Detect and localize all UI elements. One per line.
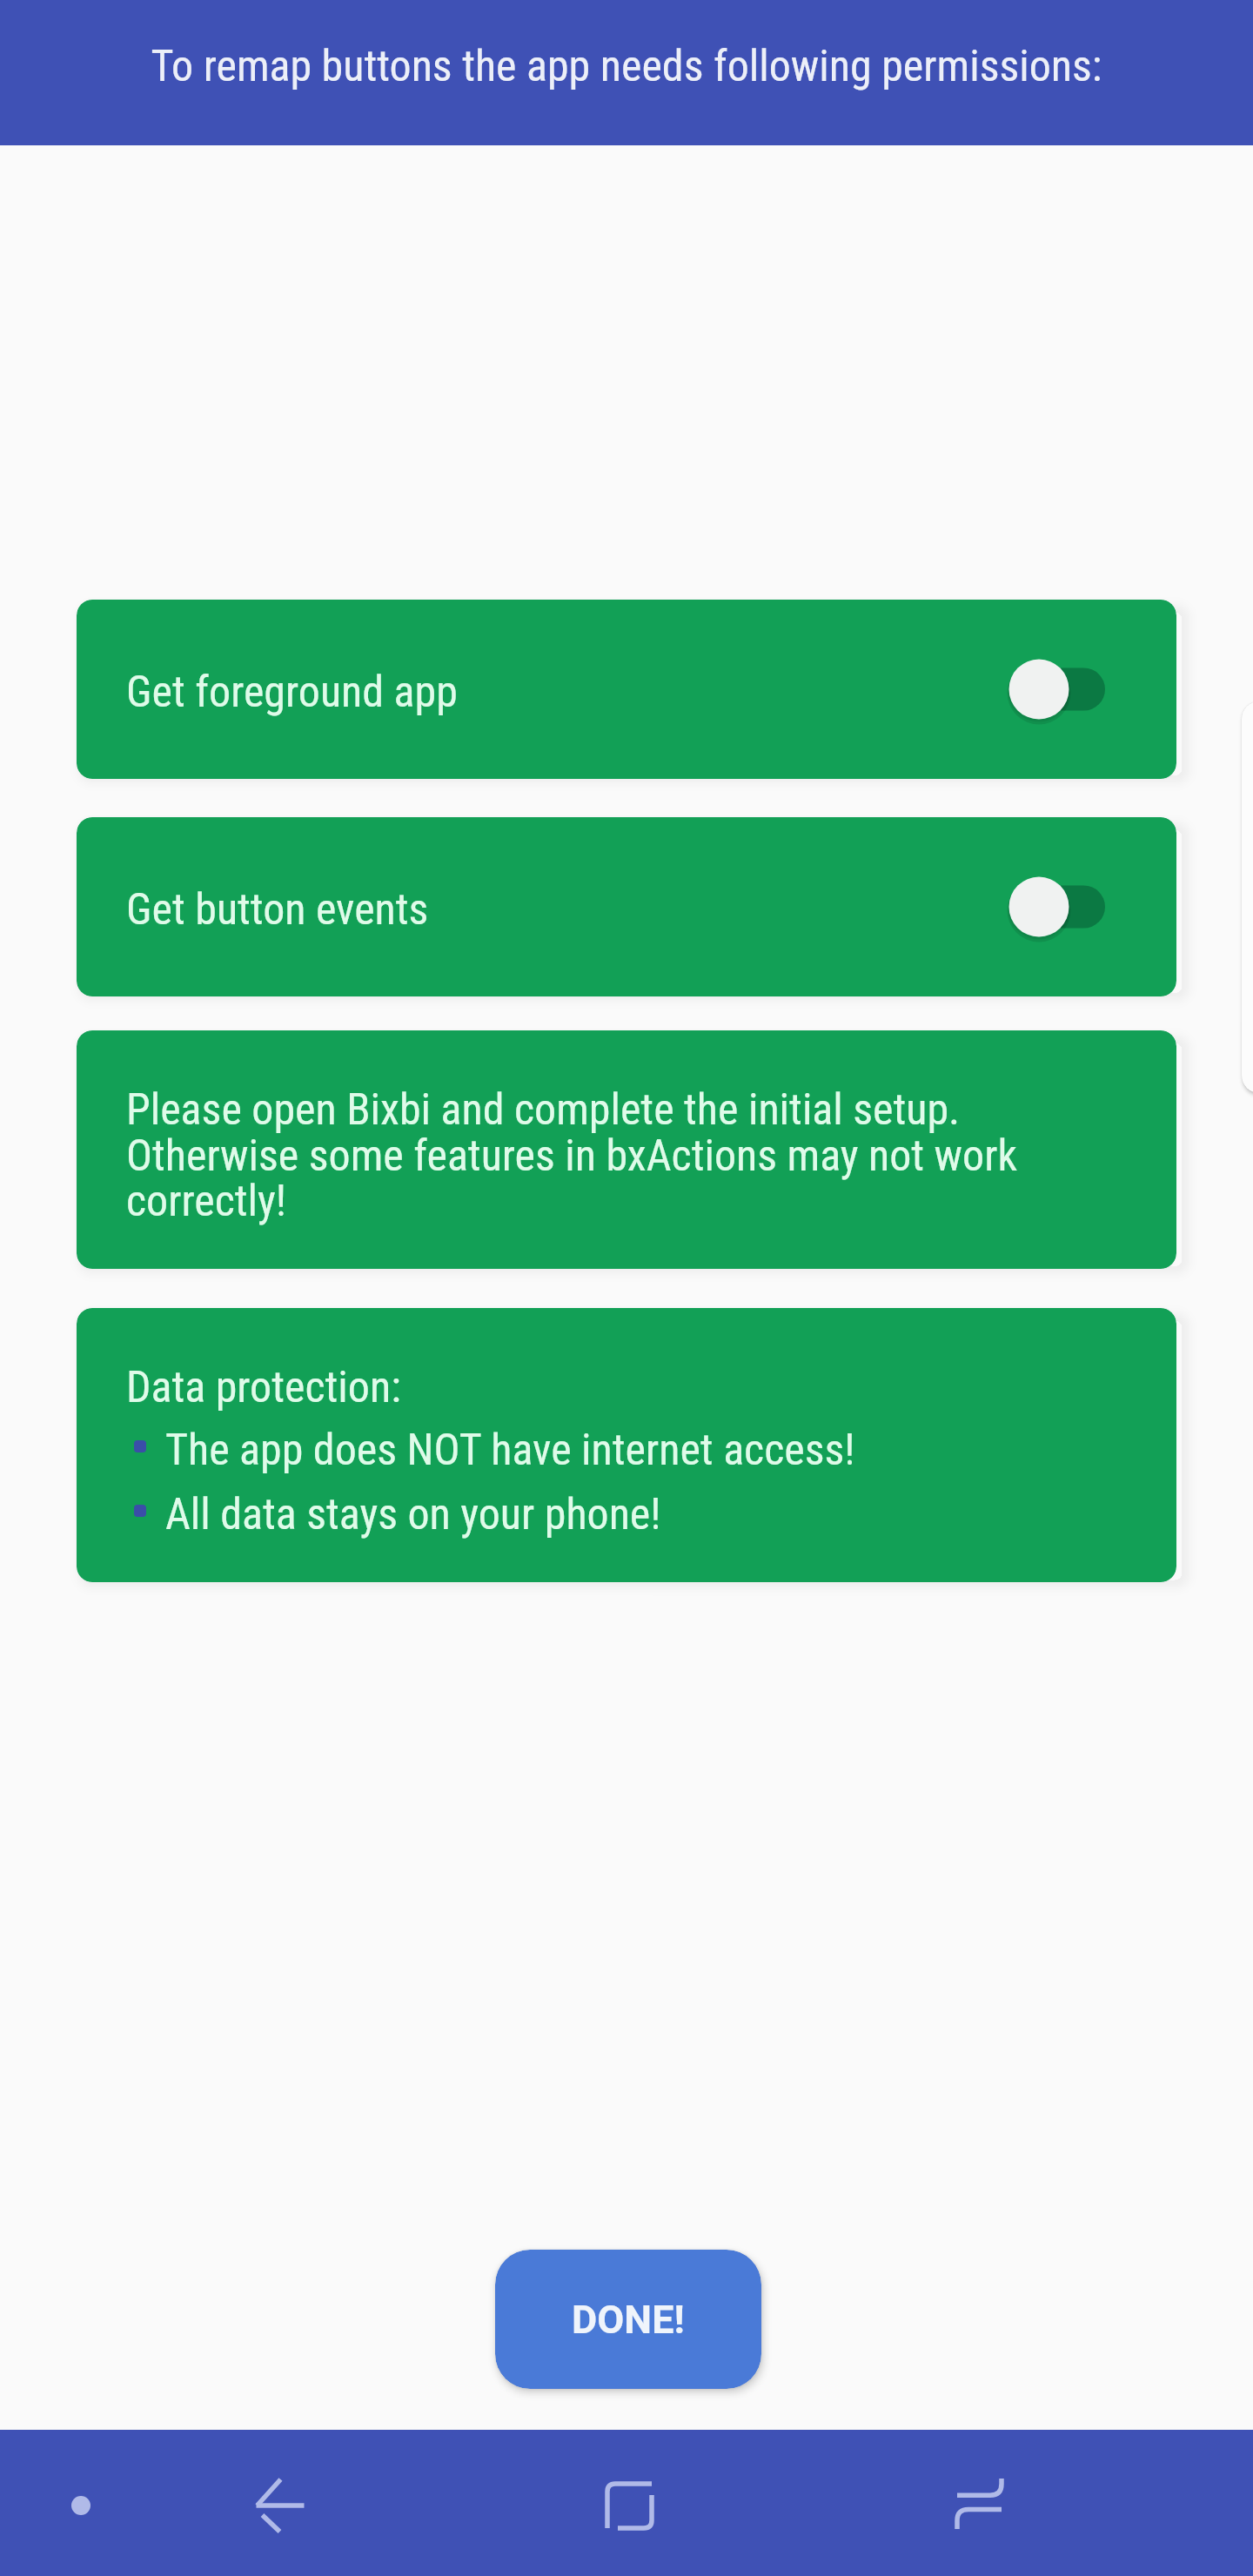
button[interactable]: Recent apps bbox=[927, 2452, 1031, 2556]
button[interactable]: Please open Bixbi and complete the initi… bbox=[77, 1030, 1176, 1269]
staticText: Get foreground app bbox=[126, 667, 458, 718]
staticText: Get button events bbox=[126, 884, 429, 936]
staticText: The app does NOT have internet access! bbox=[165, 1425, 855, 1476]
button[interactable]: DONE! bbox=[495, 2250, 761, 2389]
button[interactable]: Data protection: bbox=[77, 1308, 1176, 1582]
button[interactable]: Get button events bbox=[77, 817, 1176, 996]
staticText: Data protection: bbox=[126, 1362, 401, 1413]
staticText: All data stays on your phone! bbox=[165, 1489, 661, 1540]
staticText: DONE! bbox=[572, 2297, 685, 2343]
button[interactable]: Home bbox=[577, 2453, 681, 2558]
button[interactable]: Back bbox=[205, 2453, 310, 2558]
button[interactable]: Get foreground app bbox=[77, 600, 1176, 779]
staticText: Please open Bixbi and complete the initi… bbox=[126, 1084, 1083, 1226]
other: Status indicator bbox=[29, 2453, 133, 2558]
staticText: To remap buttons the app needs following… bbox=[151, 41, 1102, 92]
